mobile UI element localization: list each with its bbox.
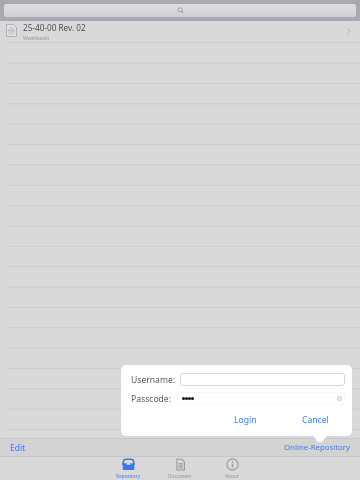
staticText: Repository xyxy=(116,473,141,480)
button[interactable]: Edit xyxy=(10,442,26,454)
staticText: Cancel xyxy=(302,414,329,426)
button[interactable] xyxy=(0,403,360,423)
button[interactable]: Repository xyxy=(102,456,154,480)
button[interactable]: About xyxy=(206,456,258,480)
button[interactable] xyxy=(0,363,360,383)
staticText: Username: xyxy=(131,374,176,386)
button[interactable]: Online-Repository xyxy=(284,442,350,453)
staticText: Edit xyxy=(10,442,26,454)
button[interactable]: Cancel xyxy=(292,411,338,429)
staticText: About xyxy=(225,473,239,480)
button[interactable]: Clear xyxy=(337,396,342,401)
button[interactable]: 25-40-00 Rev. 02 xyxy=(0,21,360,43)
button[interactable]: Username field xyxy=(180,373,345,386)
staticText: 25-40-00 Rev. 02 xyxy=(23,22,86,33)
staticText: Online-Repository xyxy=(284,442,350,453)
button[interactable]: Search xyxy=(4,4,356,17)
button[interactable]: Passcode field xyxy=(177,392,345,405)
button[interactable] xyxy=(0,383,360,403)
staticText: Login xyxy=(234,414,257,426)
staticText: Passcode: xyxy=(131,393,172,405)
button[interactable]: Login xyxy=(222,411,268,429)
staticText: Washbasin xyxy=(23,34,50,41)
button[interactable]: Document xyxy=(154,456,206,480)
staticText: Document xyxy=(168,473,192,480)
